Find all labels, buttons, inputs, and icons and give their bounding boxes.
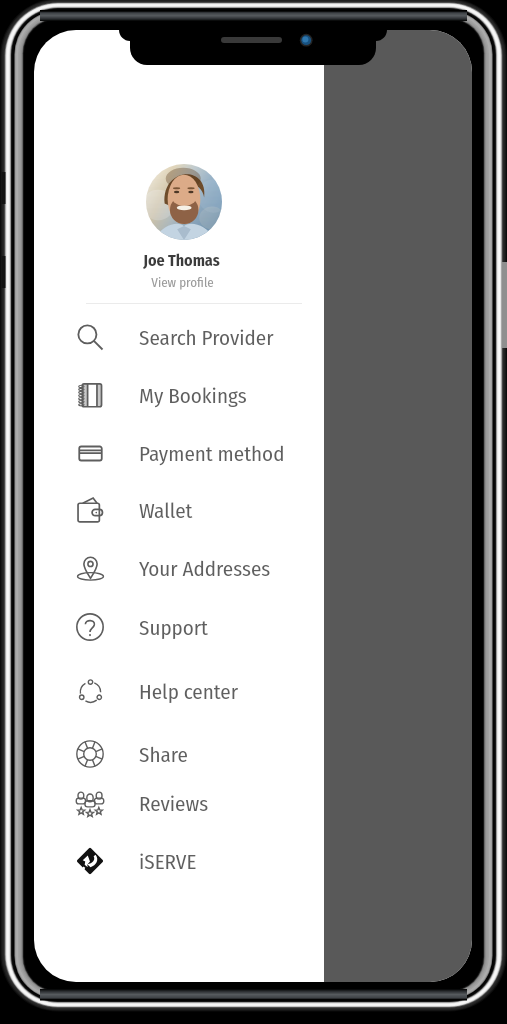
- staticText: Payment method: [139, 441, 285, 466]
- button[interactable]: Payment method: [34, 425, 324, 481]
- button[interactable]: Help center: [34, 663, 324, 719]
- button[interactable]: My Bookings: [34, 367, 324, 423]
- staticText: Support: [139, 615, 208, 640]
- button[interactable]: Joe Thomas: [93, 248, 269, 272]
- staticText: Reviews: [139, 791, 209, 816]
- button[interactable]: Support: [34, 599, 324, 655]
- button[interactable]: Wallet: [34, 482, 324, 538]
- staticText: My Bookings: [139, 383, 247, 408]
- button[interactable]: Search Provider: [34, 309, 324, 365]
- staticText: Help center: [139, 679, 239, 704]
- staticText: Your Addresses: [139, 556, 271, 581]
- button[interactable]: Your Addresses: [34, 540, 324, 596]
- staticText: Share: [139, 742, 188, 767]
- button[interactable]: Share: [34, 726, 324, 782]
- button[interactable]: Profile photo: [146, 164, 222, 240]
- staticText: View profile: [151, 275, 214, 291]
- button[interactable]: View profile: [94, 273, 270, 293]
- button[interactable]: iSERVE: [34, 833, 324, 889]
- staticText: Search Provider: [139, 325, 274, 350]
- staticText: iSERVE: [139, 849, 197, 874]
- button[interactable]: Reviews: [34, 775, 324, 831]
- staticText: Joe Thomas: [143, 251, 220, 270]
- staticText: Wallet: [139, 498, 193, 523]
